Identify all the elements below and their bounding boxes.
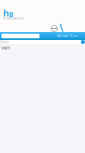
staticText: h — [3, 7, 9, 19]
staticText: homebackoffice — [3, 17, 24, 20]
button[interactable]: Login — [1, 45, 10, 50]
staticText: Monday 10 Jun — [57, 34, 78, 38]
staticText: B — [9, 10, 13, 19]
staticText: Login — [2, 46, 10, 49]
